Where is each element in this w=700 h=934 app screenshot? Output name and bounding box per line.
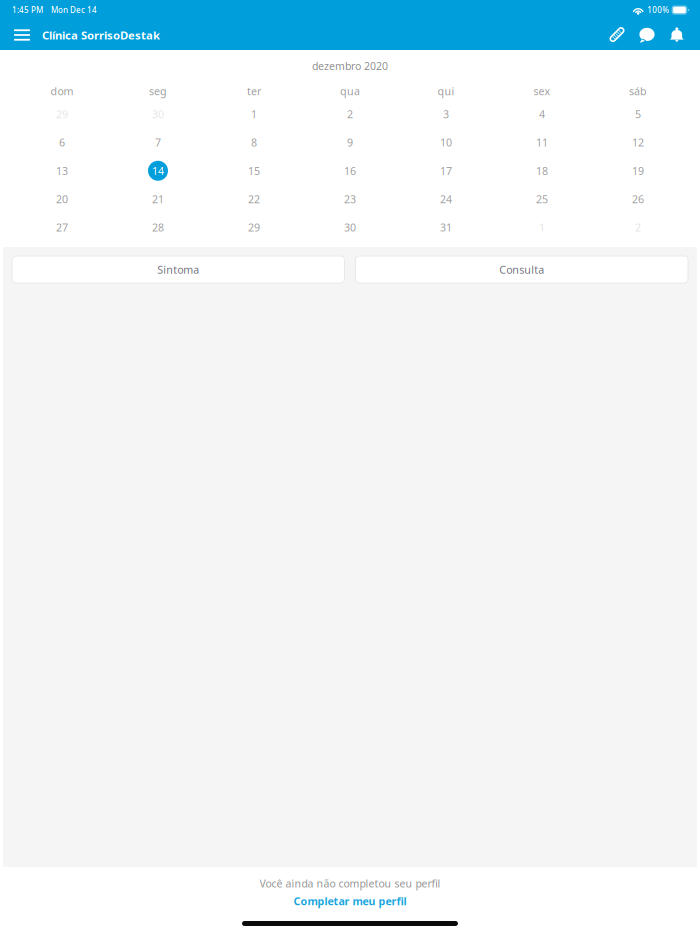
staticText: 6 — [59, 135, 65, 150]
staticText: 5 — [635, 107, 641, 121]
staticText: 3 — [443, 107, 449, 121]
button[interactable]: Consulta — [355, 256, 688, 283]
staticText: Clínica SorrisoDestak — [42, 27, 160, 43]
button[interactable]: 14 — [110, 157, 206, 185]
button[interactable]: 18 — [494, 157, 590, 185]
staticText: dezembro 2020 — [312, 59, 388, 73]
staticText: Completar meu perfil — [293, 894, 406, 908]
button[interactable]: 2 — [302, 100, 398, 128]
staticText: 25 — [536, 192, 548, 206]
button[interactable]: 21 — [110, 185, 206, 213]
staticText: 1 — [251, 107, 257, 121]
staticText: 1 — [539, 220, 545, 234]
staticText: 100% — [647, 5, 669, 15]
staticText: 29 — [248, 220, 260, 234]
button[interactable]: Completar meu perfil — [293, 892, 406, 910]
button[interactable]: 11 — [494, 128, 590, 157]
button[interactable]: 7 — [110, 128, 206, 157]
button[interactable]: Sintoma — [12, 256, 344, 283]
button[interactable]: Menu — [7, 20, 37, 50]
button[interactable]: 25 — [494, 185, 590, 213]
staticText: Mon Dec 14 — [51, 5, 97, 15]
staticText: 28 — [152, 220, 164, 234]
button[interactable]: 13 — [14, 157, 110, 185]
staticText: 22 — [248, 192, 260, 206]
staticText: ter — [247, 84, 261, 98]
staticText: 13 — [56, 164, 68, 178]
button[interactable]: 3 — [398, 100, 494, 128]
staticText: 17 — [440, 164, 452, 178]
button[interactable]: 20 — [14, 185, 110, 213]
button[interactable]: 29 — [206, 213, 302, 241]
button[interactable]: 28 — [110, 213, 206, 241]
button[interactable]: 27 — [14, 213, 110, 241]
button[interactable]: 4 — [494, 100, 590, 128]
staticText: Você ainda não completou seu perfil — [259, 876, 440, 891]
staticText: 15 — [248, 164, 260, 178]
staticText: sex — [533, 84, 550, 98]
button[interactable]: 24 — [398, 185, 494, 213]
button[interactable]: 23 — [302, 185, 398, 213]
button[interactable]: 30 — [302, 213, 398, 241]
button[interactable]: Anexos — [602, 20, 632, 50]
staticText: 31 — [440, 220, 452, 234]
staticText: 26 — [632, 192, 644, 206]
staticText: 2 — [635, 220, 641, 234]
staticText: 8 — [251, 135, 257, 150]
staticText: 21 — [152, 192, 164, 206]
staticText: 9 — [347, 135, 353, 150]
staticText: 7 — [155, 135, 161, 150]
staticText: 2 — [347, 107, 353, 121]
staticText: 27 — [56, 220, 68, 234]
staticText: 24 — [440, 192, 452, 206]
button[interactable]: 15 — [206, 157, 302, 185]
staticText: 20 — [56, 192, 68, 206]
button[interactable]: 17 — [398, 157, 494, 185]
staticText: 19 — [632, 164, 644, 178]
button[interactable]: 6 — [14, 128, 110, 157]
staticText: dom — [50, 84, 73, 98]
button[interactable]: 9 — [302, 128, 398, 157]
button[interactable]: 26 — [590, 185, 686, 213]
staticText: 29 — [56, 107, 68, 121]
button[interactable]: 8 — [206, 128, 302, 157]
staticText: seg — [149, 84, 167, 98]
staticText: 30 — [344, 220, 356, 234]
staticText: sáb — [629, 84, 647, 98]
staticText: qui — [437, 84, 454, 98]
button[interactable]: 19 — [590, 157, 686, 185]
button[interactable]: 22 — [206, 185, 302, 213]
staticText: 14 — [152, 164, 164, 178]
staticText: 4 — [539, 107, 545, 121]
button[interactable]: Notificações — [662, 20, 692, 50]
staticText: 1:45 PM — [12, 5, 43, 15]
staticText: 12 — [632, 135, 644, 150]
staticText: 11 — [536, 135, 548, 150]
button[interactable]: 16 — [302, 157, 398, 185]
staticText: 23 — [344, 192, 356, 206]
staticText: Consulta — [499, 262, 544, 277]
button[interactable]: Mensagens — [632, 20, 662, 50]
button[interactable]: 10 — [398, 128, 494, 157]
button[interactable]: 12 — [590, 128, 686, 157]
staticText: qua — [340, 84, 360, 98]
button[interactable]: 5 — [590, 100, 686, 128]
staticText: 30 — [152, 107, 164, 121]
button[interactable]: 1 — [206, 100, 302, 128]
button[interactable]: 31 — [398, 213, 494, 241]
staticText: Sintoma — [157, 262, 199, 277]
staticText: 10 — [440, 135, 452, 150]
staticText: 18 — [536, 164, 548, 178]
staticText: 16 — [344, 164, 356, 178]
